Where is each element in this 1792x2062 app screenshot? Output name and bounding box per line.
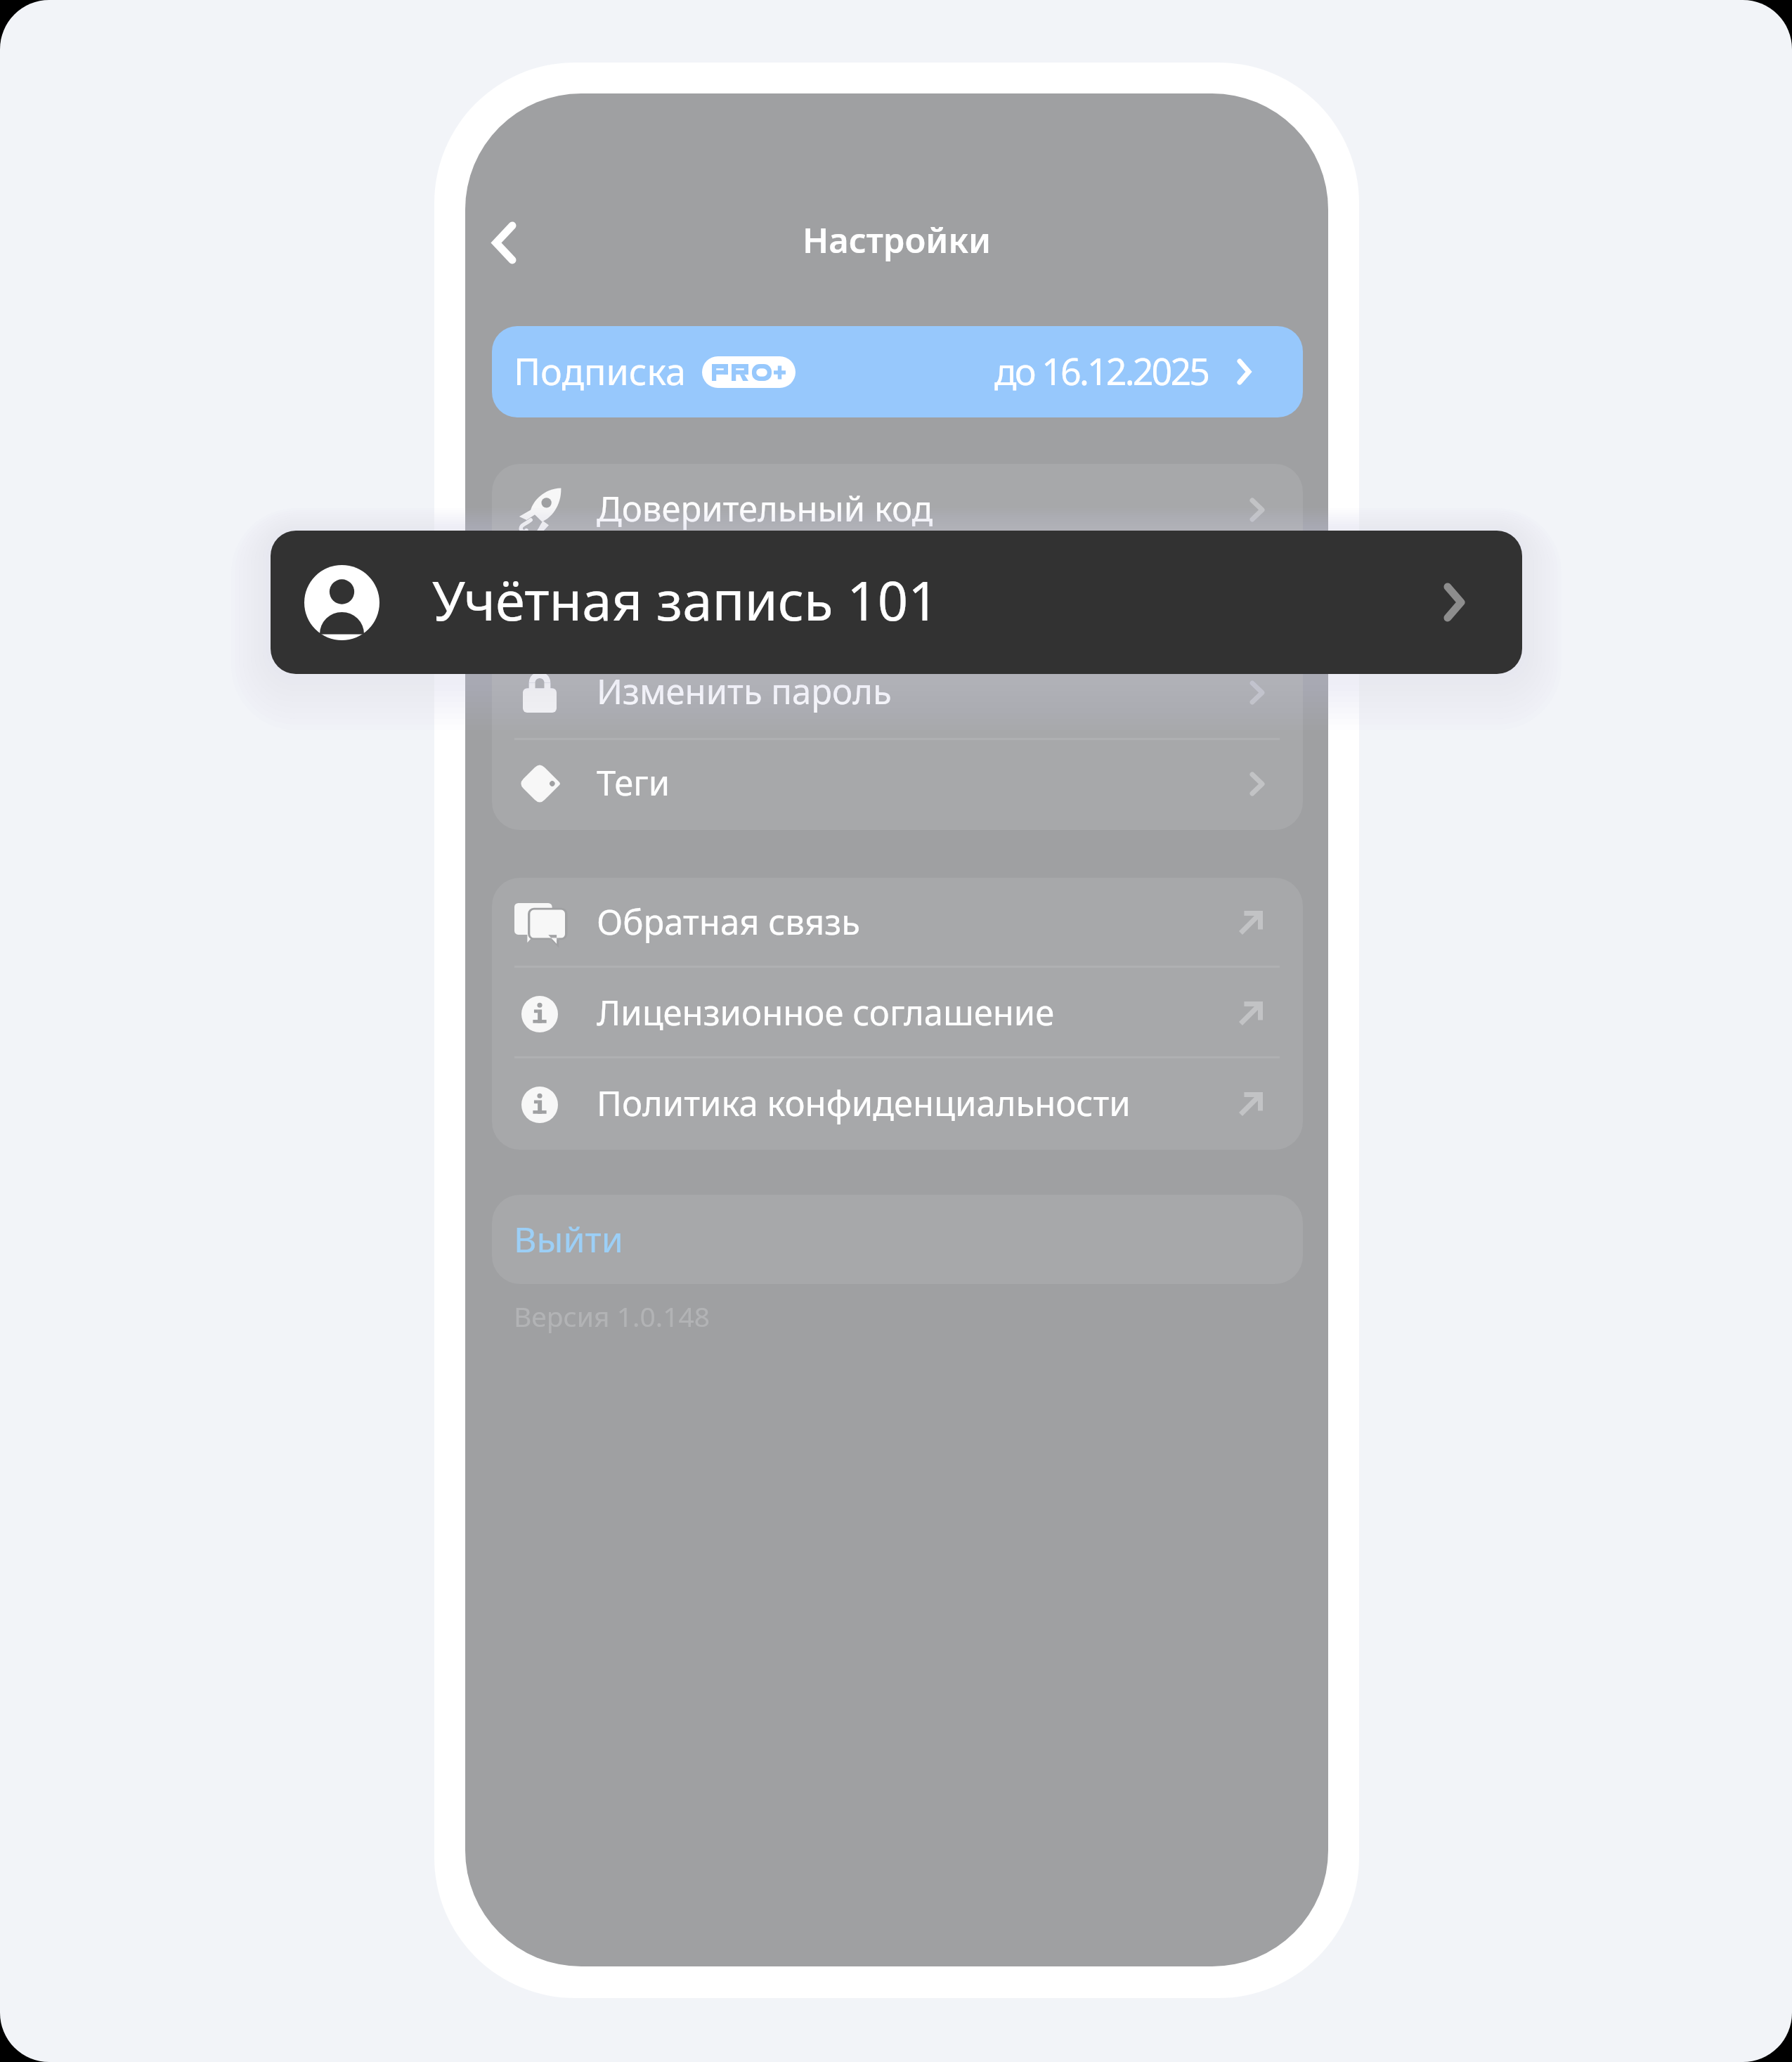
button[interactable]: Теги: [492, 738, 1303, 829]
staticText: Политика конфиденциальности: [597, 1079, 1131, 1127]
staticText: Изменить пароль: [597, 668, 892, 715]
staticText: до 16.12.2025: [994, 346, 1209, 396]
staticText: Лицензионное соглашение: [597, 989, 1055, 1036]
button[interactable]: Учётная запись 101: [492, 555, 1303, 647]
staticText: Учётная запись 101: [432, 564, 939, 637]
button[interactable]: Изменить пароль: [492, 647, 1303, 738]
staticText: Учётная запись 101: [597, 576, 923, 623]
button[interactable]: Выйти: [492, 1195, 1303, 1284]
staticText: Доверительный код: [597, 485, 933, 532]
staticText: Теги: [597, 759, 670, 806]
button[interactable]: Доверительный код: [492, 464, 1303, 555]
button[interactable]: Политика конфиденциальности: [492, 1059, 1303, 1150]
button[interactable]: Лицензионное соглашение: [492, 968, 1303, 1059]
button[interactable]: Учётная запись 101: [271, 531, 1522, 674]
staticText: Настройки: [803, 216, 992, 264]
staticText: Обратная связь: [597, 898, 860, 945]
button[interactable]: Подписка: [492, 326, 1303, 417]
button[interactable]: Обратная связь: [492, 878, 1303, 968]
staticText: Подписка: [514, 346, 686, 396]
staticText: Выйти: [514, 1215, 623, 1263]
button[interactable]: Back: [465, 197, 543, 288]
staticText: Версия 1.0.148: [514, 1297, 710, 1335]
